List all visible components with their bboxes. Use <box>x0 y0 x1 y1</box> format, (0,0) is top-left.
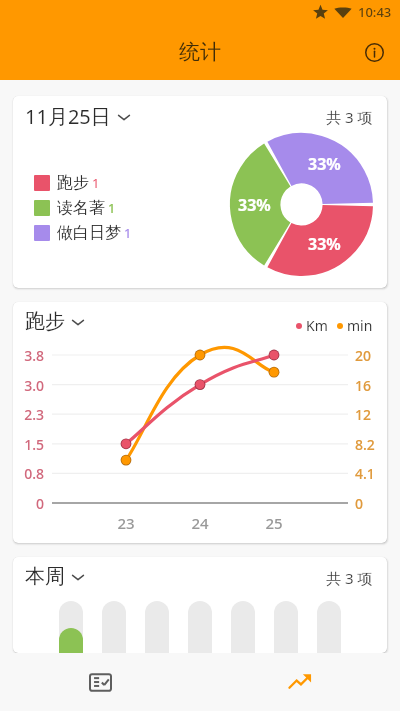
button[interactable]: 跑步 <box>25 309 86 334</box>
button[interactable] <box>188 601 212 653</box>
staticText: 共 3 项 <box>326 568 373 588</box>
button[interactable] <box>231 601 255 653</box>
button[interactable] <box>317 601 341 653</box>
button[interactable] <box>59 601 83 653</box>
button[interactable] <box>145 601 169 653</box>
staticText: 24 <box>185 513 215 533</box>
staticText: 33% <box>308 153 341 175</box>
staticText: 12 <box>355 405 387 424</box>
staticText: 8.2 <box>355 435 387 454</box>
button[interactable]: 做白日梦 <box>34 223 132 243</box>
staticText: 做白日梦 <box>57 223 121 243</box>
staticText: 23 <box>111 513 141 533</box>
button[interactable] <box>274 601 298 653</box>
staticText: 3.0 <box>13 376 44 395</box>
staticText: 跑步 <box>57 173 89 193</box>
staticText: 1.5 <box>13 435 44 454</box>
staticText: 1 <box>92 174 100 192</box>
staticText: 16 <box>355 376 387 395</box>
staticText: 25 <box>259 513 289 533</box>
staticText: 统计 <box>179 39 221 65</box>
staticText: Km <box>306 316 328 335</box>
button[interactable]: 本周 <box>25 564 86 589</box>
staticText: 共 3 项 <box>326 107 373 127</box>
staticText: 本周 <box>25 564 65 589</box>
staticText: 2.3 <box>13 405 44 424</box>
staticText: 1 <box>124 224 132 242</box>
button[interactable] <box>102 601 126 653</box>
staticText: 4.1 <box>355 464 387 483</box>
button[interactable]: 跑步 <box>34 173 100 193</box>
staticText: 读名著 <box>57 198 105 218</box>
staticText: 3.8 <box>13 346 44 365</box>
button[interactable]: Info <box>356 34 392 70</box>
staticText: 10:43 <box>358 3 392 21</box>
staticText: 0 <box>355 494 387 513</box>
button[interactable]: 11月25日 <box>25 103 132 130</box>
staticText: 跑步 <box>25 309 65 334</box>
staticText: 1 <box>108 199 116 217</box>
staticText: 20 <box>355 346 387 365</box>
button[interactable]: Statistics <box>200 653 400 711</box>
button[interactable]: 读名著 <box>34 198 116 218</box>
button[interactable]: Tasks <box>0 653 200 711</box>
staticText: 33% <box>308 233 341 255</box>
staticText: min <box>347 316 373 335</box>
staticText: 0.8 <box>13 464 44 483</box>
staticText: 33% <box>238 194 271 216</box>
staticText: 11月25日 <box>25 103 111 130</box>
staticText: 0 <box>13 494 44 513</box>
